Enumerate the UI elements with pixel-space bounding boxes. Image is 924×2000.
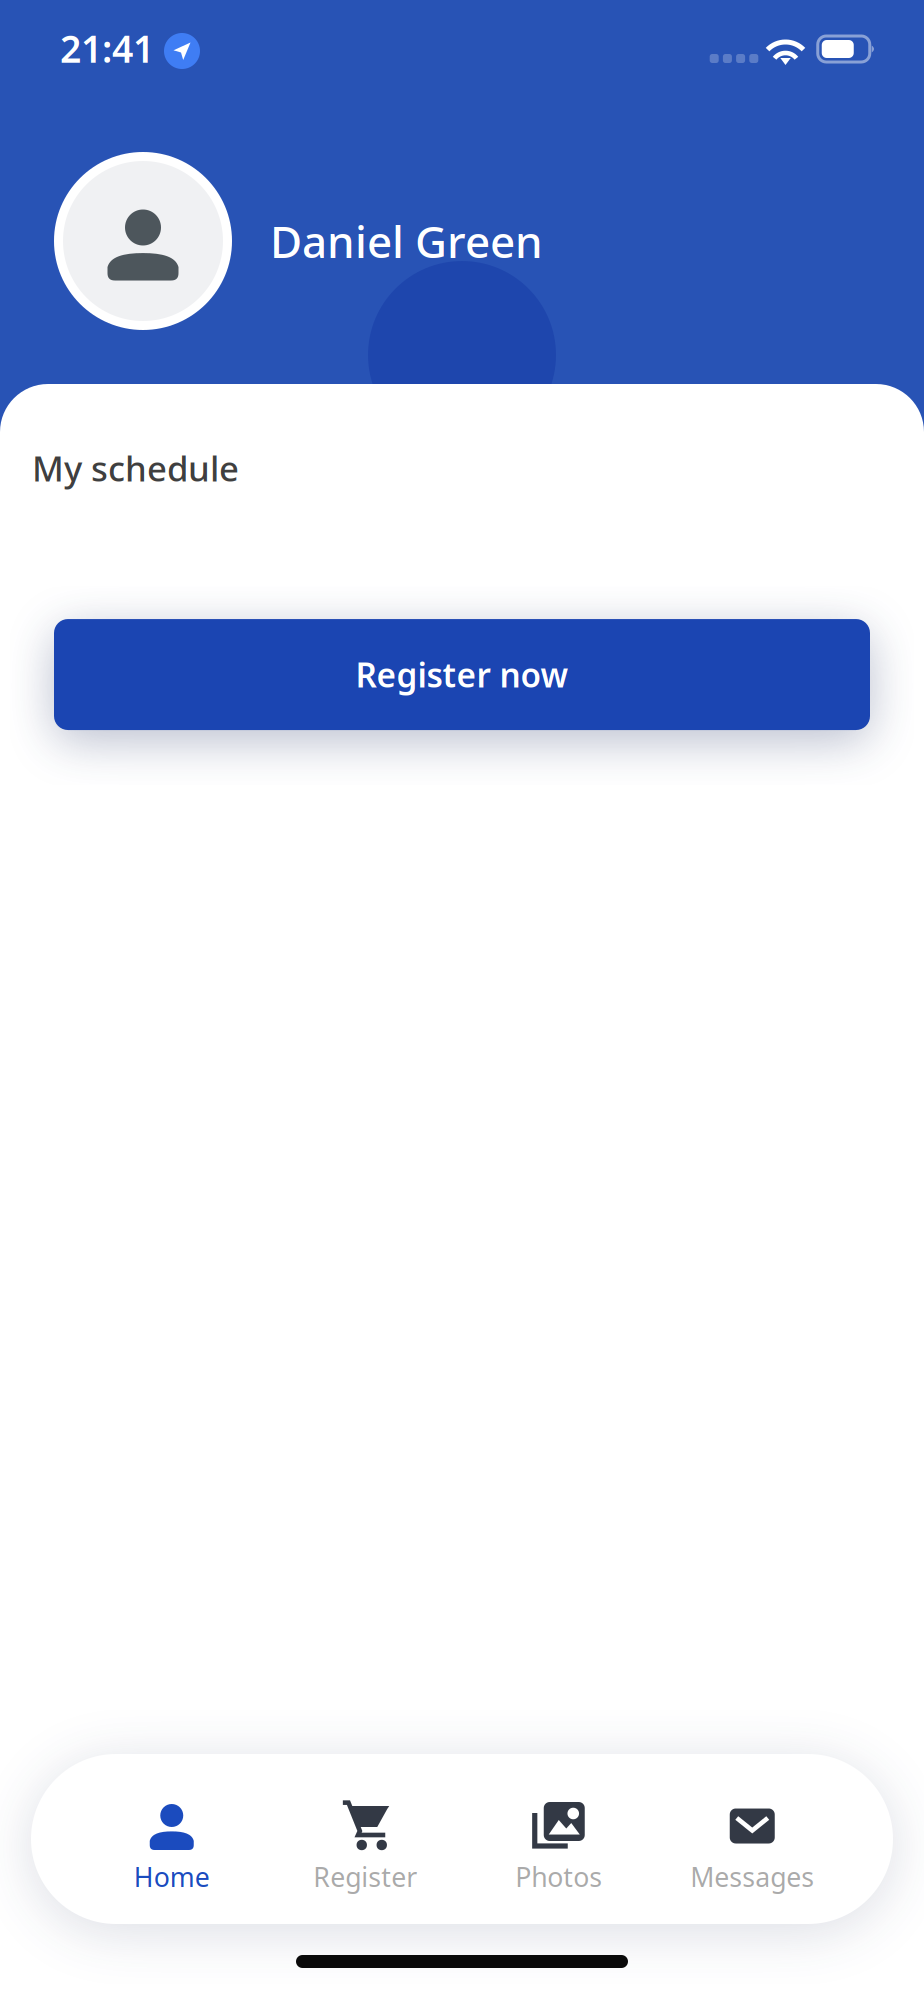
staticText: Daniel Green	[270, 212, 543, 270]
staticText: Photos	[515, 1859, 602, 1894]
staticText: 21:41	[60, 23, 154, 73]
button[interactable]: Messages	[655, 1754, 849, 1924]
button[interactable]: Register now	[54, 619, 870, 730]
button[interactable]: Home	[75, 1754, 268, 1924]
staticText: Home	[134, 1859, 210, 1894]
staticText: Register now	[355, 652, 568, 697]
button[interactable]: Photos	[462, 1754, 655, 1924]
staticText: Register	[313, 1859, 417, 1894]
staticText: Messages	[690, 1859, 814, 1894]
button[interactable]: Register	[268, 1754, 462, 1924]
staticText: My schedule	[32, 445, 239, 491]
